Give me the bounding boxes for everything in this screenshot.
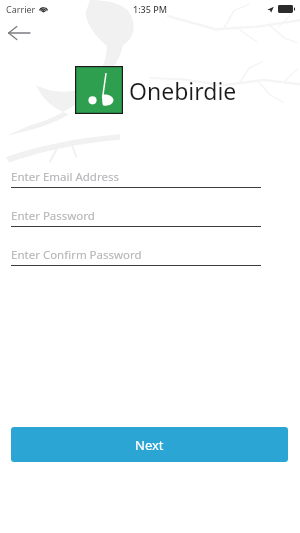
button[interactable]: Enter Email Address [11,166,261,188]
staticText: Carrier [6,3,36,15]
staticText: Enter Confirm Password [11,247,142,263]
staticText: Enter Password [11,208,95,224]
staticText: 1:35 PM [133,3,167,15]
button[interactable]: Next [11,427,288,462]
button[interactable]: Back [4,20,42,46]
button[interactable]: Enter Confirm Password [11,244,261,266]
staticText: Onebirdie [129,75,237,106]
staticText: Next [135,436,164,454]
button[interactable]: Enter Password [11,205,261,227]
staticText: Enter Email Address [11,169,119,185]
